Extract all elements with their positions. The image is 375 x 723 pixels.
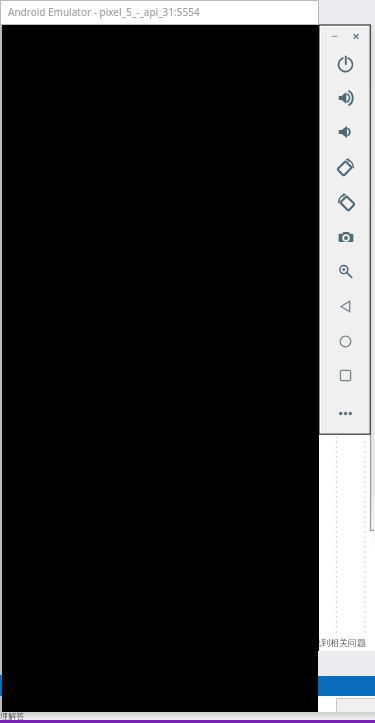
button[interactable]: Minimize [328,29,342,43]
button[interactable]: Zoom [338,264,353,279]
button[interactable]: Back [338,299,353,314]
staticText: 找到相关问题 [312,637,366,648]
staticText: 理解答 [0,711,24,721]
button[interactable]: Rotate left [337,158,355,176]
staticText: Android Emulator - pixel_5_-_api_31:5554 [8,5,200,19]
button[interactable]: More options [338,406,353,421]
button[interactable]: Rotate right [337,193,355,211]
button[interactable]: Overview [338,368,353,383]
button[interactable]: Close [349,29,363,43]
button[interactable]: Screenshot [338,229,354,245]
button[interactable]: Volume down [338,124,354,140]
button[interactable]: Home [338,334,353,349]
button[interactable]: Volume up [338,90,354,106]
button[interactable]: Power [338,56,353,71]
